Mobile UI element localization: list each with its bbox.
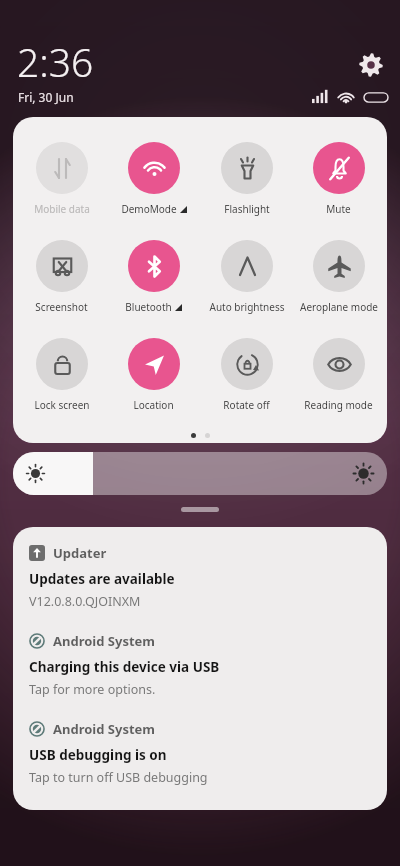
button[interactable]: Auto brightness (202, 240, 291, 314)
staticText: V12.0.8.0.QJOINXM (29, 593, 141, 610)
button[interactable]: Bluetooth (109, 240, 198, 314)
staticText: Screenshot (35, 300, 88, 314)
button[interactable]: Flashlight (202, 142, 291, 216)
staticText: Mobile data (34, 202, 90, 216)
staticText: Tap for more options. (29, 681, 156, 698)
button[interactable]: DemoMode (109, 142, 198, 216)
staticText: Rotate off (223, 398, 270, 412)
button[interactable]: Aeroplane mode (294, 240, 383, 314)
staticText: Bluetooth (125, 300, 172, 314)
staticText: Auto brightness (209, 300, 285, 314)
staticText: Aeroplane mode (300, 300, 378, 314)
staticText: Fri, 30 Jun (18, 89, 74, 105)
button[interactable]: Location (109, 338, 198, 412)
button[interactable]: Android System (29, 632, 371, 698)
staticText: Android System (53, 632, 156, 650)
staticText: Updates are available (29, 570, 175, 588)
button[interactable]: Settings (357, 51, 385, 79)
button[interactable]: Mobile data (17, 142, 106, 216)
staticText: Flashlight (224, 202, 270, 216)
staticText: 2:36 (17, 35, 94, 88)
button[interactable]: Mute (294, 142, 383, 216)
staticText: DemoMode (121, 202, 177, 216)
button[interactable]: Updater (29, 544, 371, 610)
staticText: Updater (53, 544, 107, 562)
staticText: Reading mode (304, 398, 373, 412)
button[interactable]: Rotate off (202, 338, 291, 412)
staticText: Lock screen (34, 398, 90, 412)
button[interactable]: Lock screen (17, 338, 106, 412)
button[interactable]: Reading mode (294, 338, 383, 412)
staticText: USB debugging is on (29, 746, 167, 764)
staticText: Charging this device via USB (29, 658, 220, 676)
staticText: Tap to turn off USB debugging (29, 769, 208, 786)
button[interactable]: Screenshot (17, 240, 106, 314)
staticText: Android System (53, 720, 156, 738)
staticText: Location (133, 398, 174, 412)
button[interactable]: Android System (29, 720, 371, 786)
button[interactable]: Brightness (13, 452, 387, 495)
staticText: Mute (326, 202, 351, 216)
